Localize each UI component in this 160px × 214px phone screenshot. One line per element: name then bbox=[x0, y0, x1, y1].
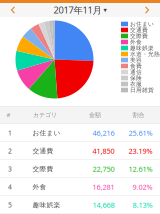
staticText: 通信 bbox=[130, 68, 142, 76]
button[interactable]: 3 bbox=[0, 160, 160, 178]
staticText: 4 bbox=[8, 182, 12, 192]
staticText: 交通費 bbox=[32, 147, 53, 155]
staticText: 保険 bbox=[130, 74, 142, 82]
staticText: 交通費 bbox=[130, 26, 148, 34]
staticText: # bbox=[6, 111, 10, 119]
staticText: ▾ bbox=[103, 6, 106, 14]
staticText: 46,216 bbox=[92, 128, 114, 138]
staticText: 外食 bbox=[130, 38, 142, 46]
button[interactable]: 4 bbox=[0, 178, 160, 196]
button[interactable]: Next month bbox=[134, 3, 160, 17]
staticText: 水道・光熱 bbox=[130, 50, 160, 58]
button[interactable]: 2017年11月 bbox=[53, 3, 106, 17]
staticText: 趣味娯楽 bbox=[130, 44, 154, 52]
staticText: 趣味娯楽 bbox=[32, 201, 60, 209]
staticText: 16,281 bbox=[92, 182, 114, 192]
staticText: お住まい bbox=[32, 129, 60, 137]
button[interactable]: 5 bbox=[0, 196, 160, 214]
staticText: 1 bbox=[8, 128, 12, 138]
staticText: 衣服 bbox=[130, 80, 142, 88]
staticText: 3 bbox=[8, 164, 12, 174]
staticText: 交際費 bbox=[32, 165, 53, 173]
staticText: お住まい bbox=[130, 20, 154, 28]
staticText: 5 bbox=[8, 200, 12, 210]
staticText: 外食 bbox=[32, 183, 46, 191]
staticText: 12.61% bbox=[128, 164, 152, 174]
staticText: 25.61% bbox=[128, 128, 152, 138]
staticText: カテゴリ bbox=[33, 111, 57, 119]
staticText: 41,850 bbox=[92, 146, 114, 156]
button[interactable]: 2 bbox=[0, 142, 160, 160]
staticText: 23.19% bbox=[128, 146, 152, 156]
button[interactable]: Previous month bbox=[0, 3, 26, 17]
staticText: 22,750 bbox=[92, 164, 114, 174]
staticText: 8.13% bbox=[132, 200, 152, 210]
staticText: 14,668 bbox=[92, 200, 114, 210]
staticText: 食費 bbox=[130, 62, 142, 70]
staticText: 9.02% bbox=[132, 182, 152, 192]
button[interactable]: 1 bbox=[0, 124, 160, 142]
staticText: 美容 bbox=[130, 56, 142, 64]
staticText: 割合 bbox=[132, 111, 144, 119]
staticText: 2017年11月 bbox=[53, 4, 101, 16]
staticText: 2 bbox=[8, 146, 12, 156]
staticText: 日用雑貨 bbox=[130, 86, 154, 94]
staticText: 交際費 bbox=[130, 32, 148, 40]
staticText: 金額 bbox=[89, 111, 101, 119]
